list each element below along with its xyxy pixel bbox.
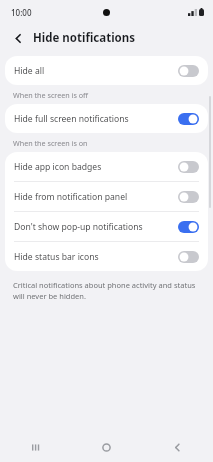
staticText: Hide all: [14, 65, 174, 77]
staticText: When the screen is off: [13, 90, 89, 100]
button[interactable]: Don't show pop-up notifications: [5, 212, 208, 241]
staticText: Hide status bar icons: [14, 251, 174, 263]
button[interactable]: Hide full screen notifications: [5, 104, 208, 133]
staticText: Hide notifications: [33, 30, 136, 46]
staticText: 10:00: [11, 7, 32, 18]
staticText: Critical notifications about phone activ…: [13, 280, 200, 301]
button[interactable]: Home: [71, 432, 142, 462]
button[interactable]: Back: [142, 432, 213, 462]
staticText: Hide app icon badges: [14, 161, 174, 173]
button[interactable]: Hide status bar icons: [5, 242, 208, 271]
button[interactable]: Hide from notification panel: [5, 182, 208, 211]
button[interactable]: Hide all: [5, 56, 208, 85]
staticText: Hide from notification panel: [14, 191, 174, 203]
button[interactable]: Hide app icon badges: [5, 152, 208, 181]
button[interactable]: Back: [9, 29, 27, 47]
staticText: Hide full screen notifications: [14, 113, 174, 125]
staticText: When the screen is on: [13, 138, 88, 148]
staticText: Don't show pop-up notifications: [14, 221, 174, 233]
button[interactable]: Recent apps: [0, 432, 71, 462]
